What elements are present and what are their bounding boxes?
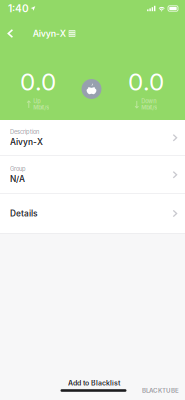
staticText: Up [33,98,40,105]
button[interactable]: Description [0,120,185,155]
button[interactable]: Back [0,24,21,43]
staticText: N/A [10,174,25,184]
staticText: Description [10,128,39,135]
staticText: Mbit/s [33,104,49,111]
staticText: Details [10,208,38,218]
button[interactable]: Details [0,194,185,233]
button[interactable]: Aivyn-X [30,24,78,43]
staticText: BLACKTUBE [142,387,179,394]
staticText: 0.0 [128,67,164,96]
staticText: 0.0 [20,67,56,96]
button[interactable]: Add to Blacklist [58,375,130,391]
button[interactable]: Group [0,156,185,193]
staticText: 1:40 [8,2,29,15]
staticText: Aivyn-X [10,137,43,147]
staticText: Add to Blacklist [68,379,120,387]
staticText: Down [141,98,156,105]
staticText: Mbit/s [141,104,157,111]
staticText: Group [10,165,26,172]
staticText: Aivyn-X [33,28,66,39]
